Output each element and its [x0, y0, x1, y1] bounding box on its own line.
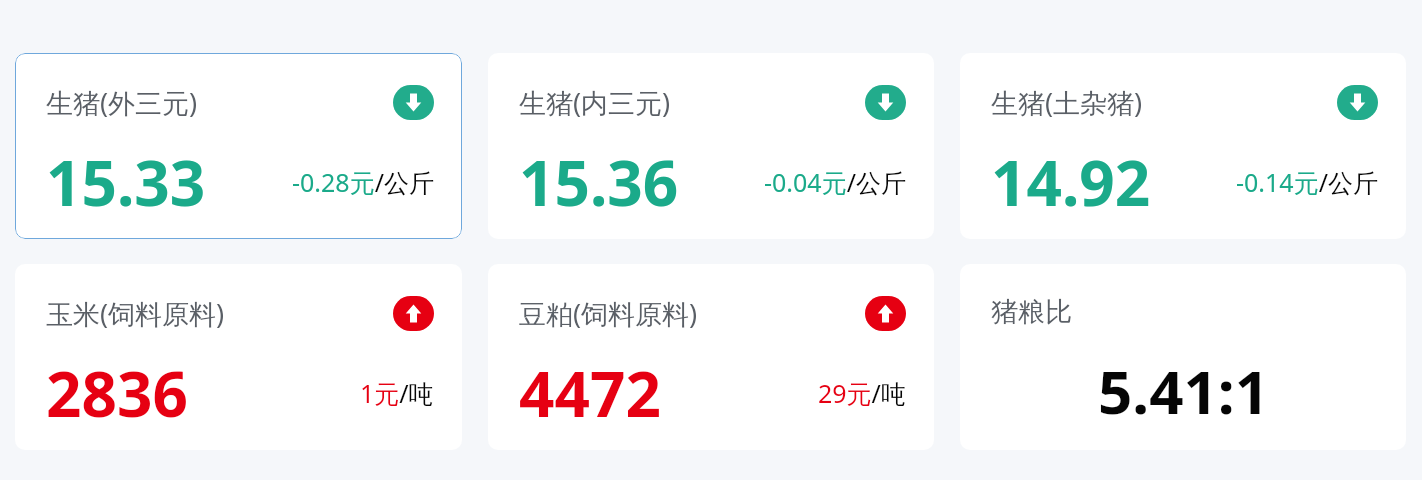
button[interactable]: 豆粕(饲料原料): [488, 264, 934, 450]
staticText: 5.41:1: [1098, 350, 1269, 432]
button[interactable]: 猪粮比: [960, 264, 1406, 450]
staticText: -0.04元/公斤: [764, 165, 906, 199]
staticText: 玉米(饲料原料): [46, 295, 225, 332]
staticText: 1元/吨: [360, 376, 434, 410]
button[interactable]: Price down: [1337, 85, 1378, 120]
staticText: 2836: [46, 351, 188, 435]
staticText: 生猪(内三元): [519, 84, 671, 121]
staticText: -0.28元/公斤: [292, 165, 434, 199]
button[interactable]: Price up: [865, 296, 906, 331]
staticText: 生猪(土杂猪): [991, 84, 1143, 121]
staticText: 4472: [519, 351, 661, 435]
button[interactable]: 生猪(外三元): [15, 53, 462, 239]
button[interactable]: 生猪(土杂猪): [960, 53, 1406, 239]
button[interactable]: Price down: [393, 85, 434, 120]
button[interactable]: Price down: [865, 85, 906, 120]
button[interactable]: Price up: [393, 296, 434, 331]
staticText: 14.92: [991, 140, 1151, 224]
button[interactable]: 生猪(内三元): [488, 53, 934, 239]
button[interactable]: 玉米(饲料原料): [15, 264, 462, 450]
staticText: 29元/吨: [818, 376, 906, 410]
staticText: -0.14元/公斤: [1236, 165, 1378, 199]
staticText: 15.36: [519, 140, 679, 224]
staticText: 豆粕(饲料原料): [519, 295, 698, 332]
staticText: 猪粮比: [991, 295, 1072, 329]
staticText: 生猪(外三元): [46, 84, 198, 121]
staticText: 15.33: [46, 140, 206, 224]
